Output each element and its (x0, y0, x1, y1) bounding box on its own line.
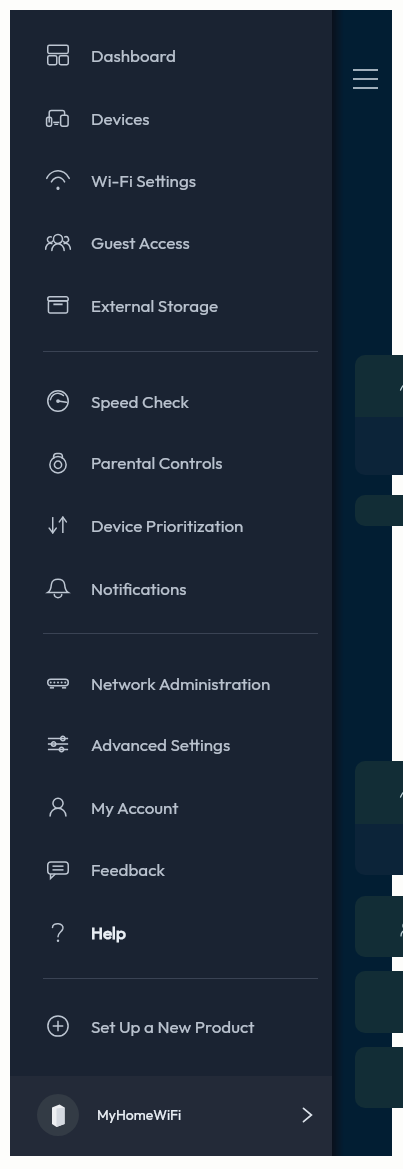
staticText: My Account (91, 797, 179, 818)
staticText: Wi-Fi Settings (91, 170, 197, 191)
button[interactable]: Speed Check (10, 370, 332, 432)
staticText: Advanced Settings (91, 734, 231, 755)
button[interactable]: Guest Access (10, 211, 332, 273)
staticText: Network Administration (91, 673, 271, 694)
button[interactable]: Menu (344, 55, 392, 103)
button[interactable]: Devices (10, 87, 332, 149)
button[interactable]: Set Up a New Product (10, 995, 332, 1057)
button[interactable]: Parental Controls (10, 431, 332, 493)
staticText: Guest Access (91, 232, 190, 253)
button[interactable]: My Account (10, 776, 332, 838)
staticText: Devices (91, 108, 150, 129)
staticText: Help (91, 922, 126, 943)
button[interactable]: Dashboard (10, 24, 332, 86)
button[interactable]: Feedback (10, 838, 332, 900)
button[interactable]: External Storage (10, 274, 332, 336)
button[interactable]: Help (10, 901, 332, 963)
staticText: Feedback (91, 859, 165, 880)
button[interactable]: Network Administration (10, 652, 332, 714)
staticText: External Storage (91, 295, 219, 316)
staticText: MyHomeWiFi (97, 1106, 182, 1124)
button[interactable]: Advanced Settings (10, 713, 332, 775)
staticText: Parental Controls (91, 452, 223, 473)
button[interactable]: MyHomeWiFi (10, 1076, 332, 1156)
staticText: Notifications (91, 578, 187, 599)
staticText: Device Prioritization (91, 515, 244, 536)
staticText: Speed Check (91, 391, 189, 412)
button[interactable]: Notifications (10, 557, 332, 619)
button[interactable]: Device Prioritization (10, 494, 332, 556)
staticText: Dashboard (91, 45, 176, 66)
button[interactable]: Wi-Fi Settings (10, 149, 332, 211)
staticText: Set Up a New Product (91, 1016, 255, 1037)
